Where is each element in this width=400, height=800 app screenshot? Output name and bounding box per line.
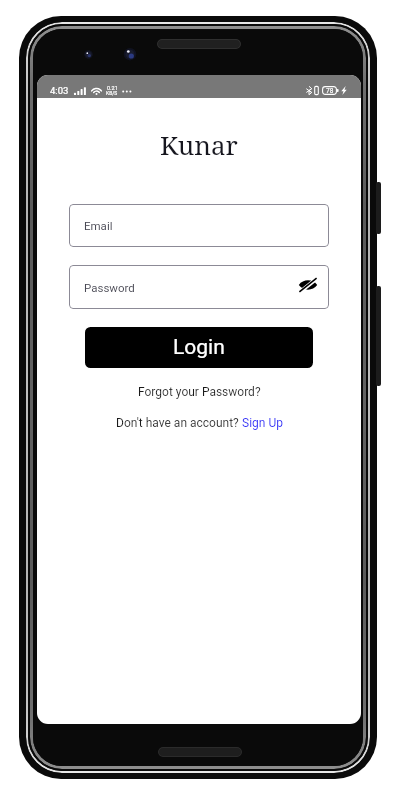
- staticText: Email: [84, 219, 113, 232]
- staticText: 78: [326, 87, 334, 95]
- staticText: Kunar: [160, 127, 238, 162]
- staticText: Sign Up: [242, 416, 283, 430]
- staticText: 4:03: [50, 85, 69, 96]
- button[interactable]: Sign Up: [242, 416, 283, 430]
- staticText: Don't have an account?: [116, 416, 242, 430]
- staticText: Forgot your Password?: [138, 385, 261, 399]
- button[interactable]: Toggle password visibility: [297, 274, 319, 296]
- button[interactable]: Password: [69, 265, 329, 309]
- staticText: Login: [173, 335, 225, 360]
- staticText: Password: [84, 281, 135, 294]
- button[interactable]: Email: [69, 204, 329, 247]
- staticText: KB/S: [106, 90, 118, 96]
- button[interactable]: Login: [85, 327, 313, 368]
- staticText: 0.21: [107, 85, 118, 91]
- button[interactable]: Forgot your Password?: [130, 383, 269, 401]
